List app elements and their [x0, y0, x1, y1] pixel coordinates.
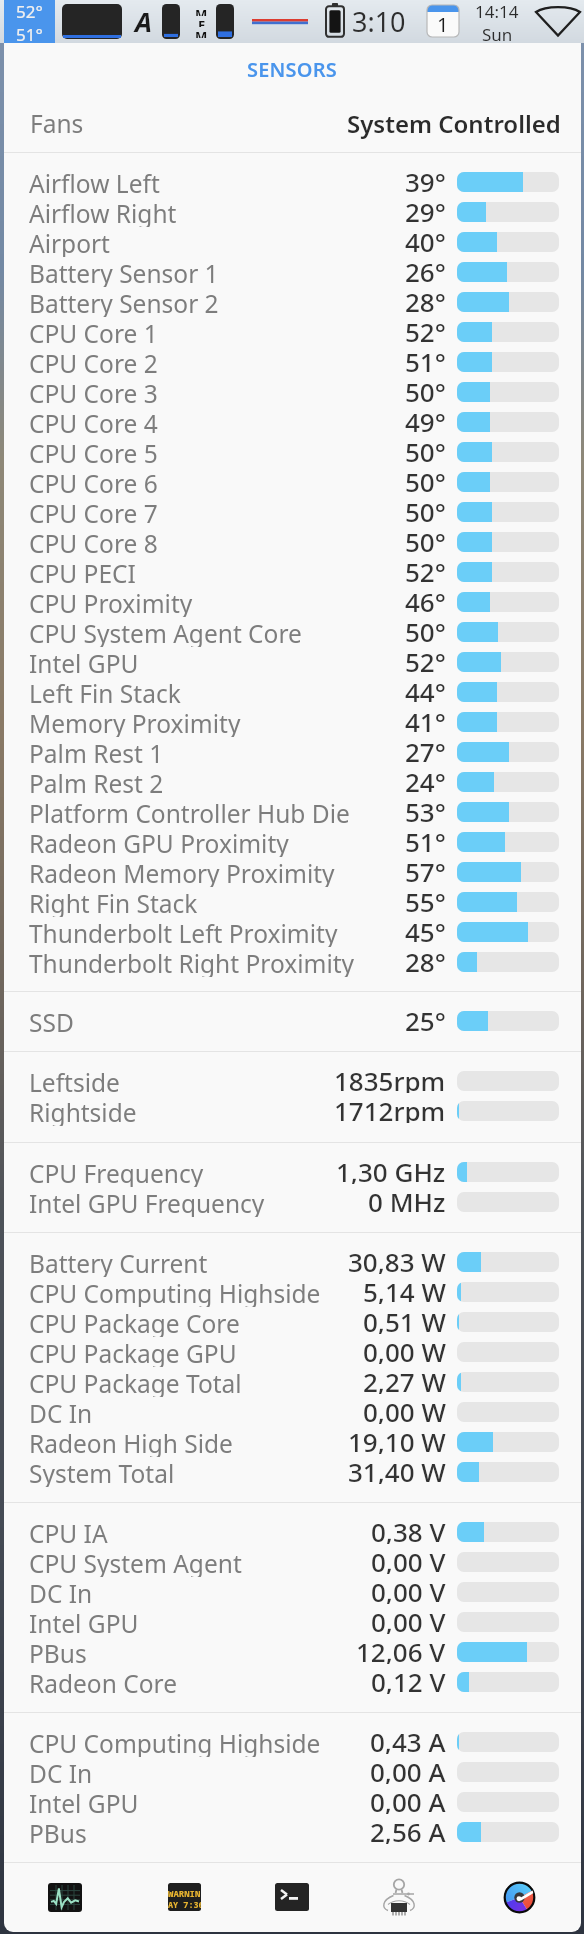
- button[interactable]: CPU Core 7: [4, 497, 581, 527]
- staticText: 0 MHz: [368, 1184, 446, 1214]
- button[interactable]: Rightside: [4, 1096, 581, 1126]
- button[interactable]: Activity monitor: [4, 1862, 120, 1932]
- staticText: Thunderbolt Right Proximity: [29, 947, 355, 977]
- staticText: 50°: [405, 614, 446, 644]
- staticText: CPU Core 3: [29, 377, 158, 407]
- button[interactable]: DC In: [4, 1397, 581, 1427]
- button[interactable]: Intel GPU: [4, 1787, 581, 1817]
- staticText: 49°: [405, 404, 446, 434]
- staticText: Intel GPU Frequency: [29, 1187, 265, 1217]
- button[interactable]: Calendar: [427, 5, 459, 37]
- button[interactable]: Warnings: [120, 1862, 236, 1932]
- button[interactable]: Airport: [4, 227, 581, 257]
- staticText: 24°: [405, 764, 446, 794]
- button[interactable]: 14:14: [466, 0, 528, 43]
- button[interactable]: Left Fin Stack: [4, 677, 581, 707]
- button[interactable]: DC In: [4, 1757, 581, 1787]
- button[interactable]: Terminal: [236, 1862, 351, 1932]
- button[interactable]: CPU Computing Highside: [4, 1727, 581, 1757]
- button[interactable]: Wi-Fi: [534, 0, 584, 43]
- button[interactable]: CPU history: [62, 4, 122, 39]
- staticText: 0,43 A: [370, 1724, 446, 1754]
- button[interactable]: Radeon Memory Proximity: [4, 857, 581, 887]
- button[interactable]: SSD: [4, 1006, 581, 1036]
- button[interactable]: CPU load: [162, 4, 180, 39]
- button[interactable]: Memory Proximity: [4, 707, 581, 737]
- staticText: 1,30 GHz: [336, 1154, 446, 1184]
- button[interactable]: Thunderbolt Right Proximity: [4, 947, 581, 977]
- button[interactable]: System Total: [4, 1457, 581, 1487]
- staticText: Intel GPU: [29, 1607, 139, 1637]
- staticText: 57°: [405, 854, 446, 884]
- button[interactable]: Gauge: [466, 1862, 581, 1932]
- button[interactable]: DC In: [4, 1577, 581, 1607]
- button[interactable]: Battery Sensor 1: [4, 257, 581, 287]
- button[interactable]: PBus: [4, 1817, 581, 1847]
- staticText: Memory Proximity: [29, 707, 241, 737]
- button[interactable]: Text input menu: [130, 0, 156, 43]
- staticText: E: [198, 16, 206, 27]
- staticText: Sun: [482, 23, 513, 43]
- button[interactable]: CPU Computing Highside: [4, 1277, 581, 1307]
- staticText: 53°: [405, 794, 446, 824]
- button[interactable]: 3:10: [352, 0, 412, 43]
- staticText: 27°: [405, 734, 446, 764]
- button[interactable]: Memory usage: [216, 4, 234, 39]
- staticText: CPU Core 2: [29, 347, 158, 377]
- button[interactable]: Network activity: [250, 0, 310, 43]
- button[interactable]: Airflow Right: [4, 197, 581, 227]
- button[interactable]: Battery: [324, 0, 346, 43]
- button[interactable]: SENSORS: [4, 43, 581, 95]
- button[interactable]: Palm Rest 1: [4, 737, 581, 767]
- button[interactable]: CPU PECI: [4, 557, 581, 587]
- button[interactable]: Fans: [4, 95, 581, 152]
- button[interactable]: CPU Core 6: [4, 467, 581, 497]
- button[interactable]: CPU Package Core: [4, 1307, 581, 1337]
- staticText: 45°: [405, 914, 446, 944]
- staticText: AY 7:36: [168, 1899, 201, 1911]
- button[interactable]: Right Fin Stack: [4, 887, 581, 917]
- button[interactable]: Radeon GPU Proximity: [4, 827, 581, 857]
- staticText: Radeon GPU Proximity: [29, 827, 289, 857]
- staticText: CPU Core 7: [29, 497, 158, 527]
- button[interactable]: CPU System Agent: [4, 1547, 581, 1577]
- button[interactable]: CPU System Agent Core: [4, 617, 581, 647]
- button[interactable]: Radeon Core: [4, 1667, 581, 1697]
- staticText: 0,38 V: [371, 1514, 446, 1544]
- staticText: Palm Rest 1: [29, 737, 164, 767]
- button[interactable]: Battery Current: [4, 1247, 581, 1277]
- button[interactable]: Leftside: [4, 1066, 581, 1096]
- button[interactable]: CPU Core 2: [4, 347, 581, 377]
- button[interactable]: CPU Core 8: [4, 527, 581, 557]
- button[interactable]: CPU IA: [4, 1517, 581, 1547]
- button[interactable]: CPU Core 4: [4, 407, 581, 437]
- button[interactable]: CPU Proximity: [4, 587, 581, 617]
- button[interactable]: Battery Sensor 2: [4, 287, 581, 317]
- button[interactable]: Thunderbolt Left Proximity: [4, 917, 581, 947]
- button[interactable]: Intel GPU: [4, 647, 581, 677]
- button[interactable]: CPU Core 5: [4, 437, 581, 467]
- staticText: Palm Rest 2: [29, 767, 164, 797]
- staticText: 51°: [16, 23, 43, 43]
- button[interactable]: CPU Core 3: [4, 377, 581, 407]
- button[interactable]: Platform Controller Hub Die: [4, 797, 581, 827]
- button[interactable]: CPU Frequency: [4, 1157, 581, 1187]
- button[interactable]: CPU Core 1: [4, 317, 581, 347]
- button[interactable]: Temperature menu: [4, 0, 55, 43]
- button[interactable]: Palm Rest 2: [4, 767, 581, 797]
- staticText: PBus: [29, 1637, 87, 1667]
- button[interactable]: Airflow Left: [4, 167, 581, 197]
- button[interactable]: Intel GPU Frequency: [4, 1187, 581, 1217]
- button[interactable]: Memory menu: [192, 0, 210, 43]
- staticText: 0,00 A: [370, 1754, 446, 1784]
- staticText: WARNIN: [168, 1887, 201, 1899]
- staticText: 39°: [405, 164, 446, 194]
- button[interactable]: Intel GPU: [4, 1607, 581, 1637]
- button[interactable]: CPU Package GPU: [4, 1337, 581, 1367]
- button[interactable]: Sensors: [351, 1862, 466, 1932]
- staticText: 0,12 V: [371, 1664, 446, 1694]
- button[interactable]: PBus: [4, 1637, 581, 1667]
- button[interactable]: CPU Package Total: [4, 1367, 581, 1397]
- staticText: 44°: [405, 674, 446, 704]
- button[interactable]: Radeon High Side: [4, 1427, 581, 1457]
